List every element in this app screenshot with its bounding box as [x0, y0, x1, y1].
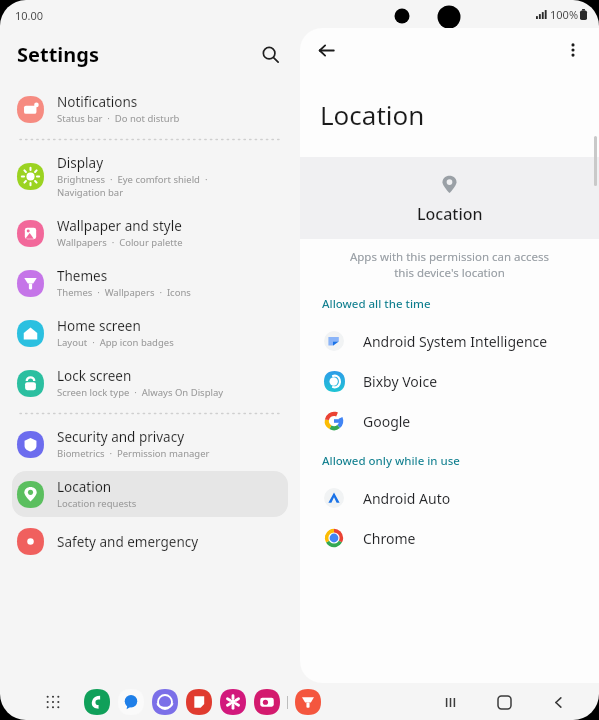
staticText: Lock screen — [57, 367, 132, 385]
staticText: Themes — [57, 267, 108, 285]
button[interactable]: Home — [487, 685, 521, 719]
staticText: Wallpapers · Colour palette — [57, 236, 183, 249]
button[interactable]: More options — [557, 34, 589, 66]
button[interactable]: Wallpaper and style — [12, 210, 288, 256]
button[interactable]: Internet — [151, 688, 179, 716]
staticText: Brightness · Eye comfort shield · — [57, 173, 208, 186]
button[interactable]: Search — [254, 38, 286, 70]
button[interactable]: Safety and emergency — [12, 521, 288, 562]
staticText: Screen lock type · Always On Display — [57, 386, 224, 399]
button[interactable]: Samsung Notes — [185, 688, 213, 716]
button[interactable]: Themes — [294, 688, 322, 716]
staticText: Biometrics · Permission manager — [57, 447, 210, 460]
button[interactable]: Gallery — [219, 688, 247, 716]
button[interactable]: Chrome — [300, 518, 599, 558]
staticText: Location — [57, 478, 112, 496]
button[interactable]: Phone — [83, 688, 111, 716]
button[interactable]: Themes — [12, 260, 288, 306]
button[interactable]: Display — [12, 147, 288, 206]
staticText: Google — [363, 412, 411, 431]
button[interactable]: Home screen — [12, 310, 288, 356]
staticText: Home screen — [57, 317, 141, 335]
staticText: 100% — [550, 7, 579, 22]
button[interactable]: Recents — [433, 685, 467, 719]
staticText: Android Auto — [363, 489, 451, 508]
staticText: Android System Intelligence — [363, 332, 548, 351]
staticText: 10.00 — [15, 8, 44, 23]
staticText: Security and privacy — [57, 428, 185, 446]
button[interactable]: Android System Intelligence — [300, 321, 599, 361]
staticText: Safety and emergency — [57, 533, 199, 551]
button[interactable]: Notifications — [12, 86, 288, 132]
button[interactable]: Security and privacy — [12, 421, 288, 467]
staticText: Themes · Wallpapers · Icons — [57, 286, 191, 299]
staticText: Location — [320, 97, 425, 132]
staticText: Location requests — [57, 497, 137, 510]
staticText: Wallpaper and style — [57, 217, 182, 235]
staticText: Allowed all the time — [322, 296, 431, 312]
button[interactable]: Bixby Voice — [300, 361, 599, 401]
staticText: Chrome — [363, 529, 416, 548]
button[interactable]: Location — [12, 471, 288, 517]
staticText: Apps with this permission can access thi… — [316, 249, 583, 280]
button[interactable]: Google — [300, 401, 599, 441]
button[interactable]: Back — [541, 685, 575, 719]
staticText: Display — [57, 154, 104, 172]
button[interactable]: Android Auto — [300, 478, 599, 518]
staticText: Allowed only while in use — [322, 453, 460, 469]
staticText: Notifications — [57, 93, 138, 111]
button[interactable]: Messages — [117, 688, 145, 716]
staticText: Status bar · Do not disturb — [57, 112, 180, 125]
staticText: Layout · App icon badges — [57, 336, 174, 349]
button[interactable]: Lock screen — [12, 360, 288, 406]
button[interactable]: Back — [310, 34, 342, 66]
button[interactable]: All apps — [40, 689, 66, 715]
button[interactable]: Camera — [253, 688, 281, 716]
staticText: Location — [417, 203, 483, 225]
staticText: Settings — [17, 41, 99, 68]
staticText: Navigation bar — [57, 186, 124, 199]
staticText: Bixby Voice — [363, 372, 438, 391]
